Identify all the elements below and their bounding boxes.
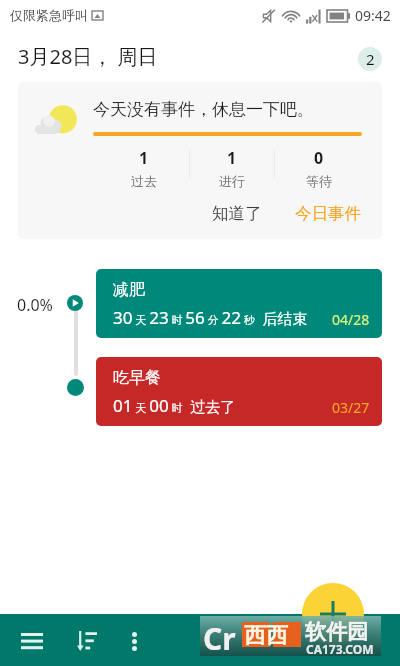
- staticText: 等待: [306, 173, 332, 189]
- button[interactable]: 吃早餐: [96, 357, 382, 426]
- staticText: 1: [227, 147, 237, 169]
- staticText: 减肥: [113, 280, 145, 300]
- staticText: 03/27: [332, 398, 370, 417]
- button[interactable]: Add: [302, 583, 364, 645]
- staticText: CA173.COM: [306, 641, 374, 657]
- staticText: 过去: [131, 173, 157, 189]
- button[interactable]: 减肥: [96, 269, 382, 338]
- button[interactable]: 知道了: [202, 197, 272, 230]
- staticText: 软件园: [305, 619, 368, 645]
- staticText: 2: [366, 49, 375, 69]
- button[interactable]: Sort: [63, 617, 111, 665]
- staticText: 04/28: [332, 310, 370, 329]
- staticText: 3月28日， 周日: [18, 43, 158, 70]
- staticText: Cr: [203, 618, 236, 658]
- staticText: 0.0%: [17, 294, 53, 316]
- staticText: 吃早餐: [113, 368, 161, 388]
- button[interactable]: More options: [110, 617, 158, 665]
- button[interactable]: 2: [358, 47, 382, 71]
- staticText: 01 天 00 时 过去了: [113, 394, 236, 417]
- staticText: 今天没有事件，休息一下吧。: [93, 99, 314, 120]
- staticText: 30 天 23 时 56 分 22 秒 后结束: [113, 306, 308, 329]
- button[interactable]: Play: [67, 295, 83, 311]
- button[interactable]: Menu: [8, 617, 56, 665]
- staticText: 西西: [244, 622, 288, 650]
- staticText: 1: [139, 147, 149, 169]
- staticText: 今日事件: [295, 203, 361, 224]
- staticText: 0: [314, 147, 324, 169]
- staticText: 仅限紧急呼叫: [10, 7, 88, 23]
- staticText: 09:42: [355, 6, 391, 25]
- button[interactable]: 今日事件: [291, 197, 365, 230]
- staticText: 知道了: [212, 203, 262, 224]
- staticText: 进行: [219, 173, 245, 189]
